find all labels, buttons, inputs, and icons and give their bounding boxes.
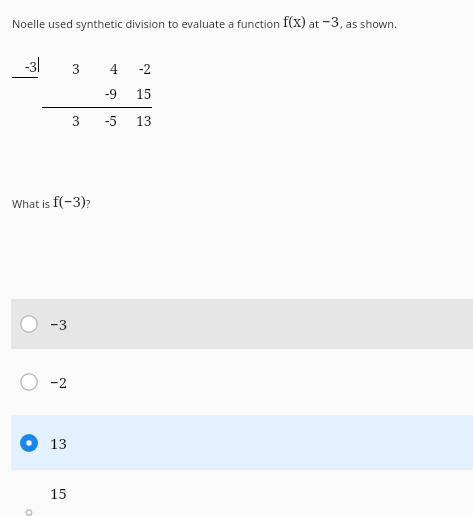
staticText: , as shown. <box>340 16 398 31</box>
button[interactable]: −2 <box>11 357 473 407</box>
staticText: f(−3) <box>53 191 86 211</box>
staticText: 15 <box>136 84 152 103</box>
staticText: −3 <box>50 314 68 334</box>
staticText: -2 <box>139 59 152 78</box>
staticText: 13 <box>136 111 152 130</box>
button[interactable]: −3 <box>11 299 473 349</box>
staticText: Noelle used synthetic division to evalua… <box>12 16 283 31</box>
staticText: -9 <box>105 84 118 103</box>
button[interactable]: 15 <box>11 475 473 516</box>
staticText: 15 <box>50 483 67 503</box>
button[interactable]: 13 <box>11 415 473 470</box>
staticText: at <box>306 16 322 31</box>
staticText: What is <box>12 196 53 211</box>
staticText: 13 <box>50 433 67 453</box>
staticText: 3 <box>72 59 80 78</box>
staticText: −3 <box>322 11 340 31</box>
staticText: 3 <box>72 111 80 130</box>
staticText: f(x) <box>283 12 306 31</box>
staticText: ? <box>86 197 91 211</box>
staticText: -3 <box>25 57 38 76</box>
staticText: −2 <box>50 372 68 392</box>
staticText: 4 <box>110 59 118 78</box>
staticText: -5 <box>105 111 118 130</box>
